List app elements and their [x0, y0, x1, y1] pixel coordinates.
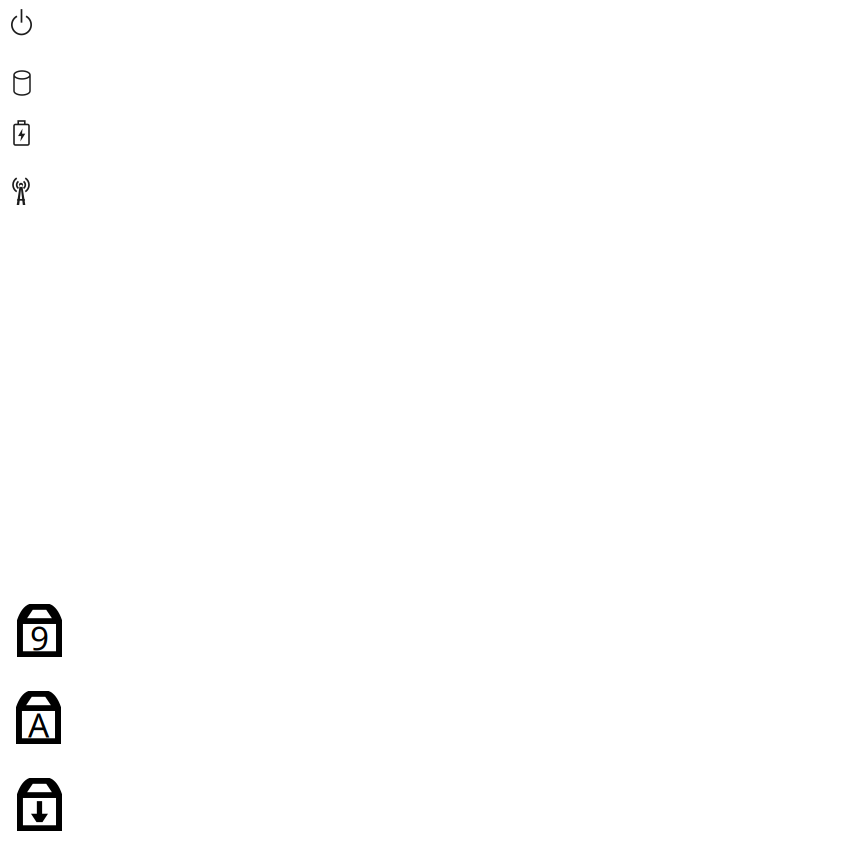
staticText: 9 [30, 615, 49, 660]
button[interactable]: Signal [11, 178, 31, 205]
button[interactable]: Scroll Lock [17, 778, 62, 831]
button[interactable]: Power [11, 8, 32, 36]
button[interactable]: Storage [14, 71, 30, 95]
staticText: A [28, 702, 49, 747]
button[interactable]: Num Lock [17, 604, 62, 657]
button[interactable]: Battery charging [14, 121, 29, 145]
button[interactable]: Caps Lock [16, 691, 61, 744]
